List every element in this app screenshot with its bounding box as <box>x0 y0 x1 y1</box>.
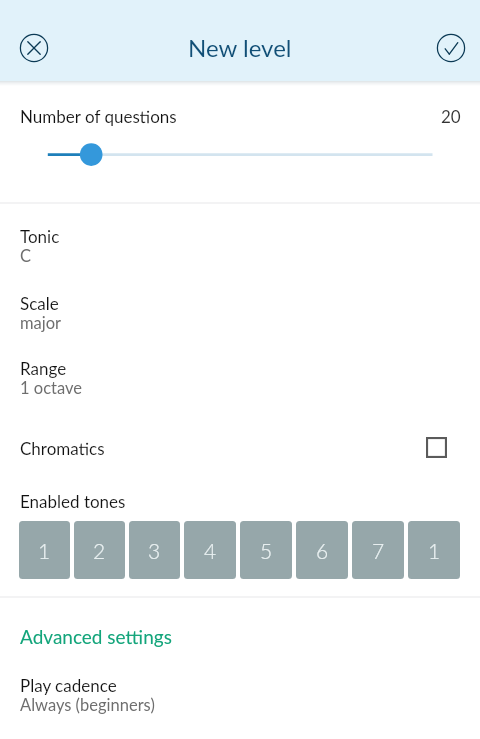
staticText: 1 <box>38 538 51 563</box>
button[interactable]: Close <box>14 28 54 68</box>
button[interactable]: 5 <box>240 521 292 579</box>
button[interactable]: Confirm <box>431 28 471 68</box>
staticText: 5 <box>260 538 273 563</box>
button[interactable]: 2 <box>74 521 125 579</box>
button[interactable]: 4 <box>184 521 236 579</box>
staticText: 2 <box>93 538 106 563</box>
button[interactable]: Chromatics <box>0 424 480 470</box>
staticText: 3 <box>148 538 161 563</box>
button[interactable]: 1 <box>19 521 70 579</box>
button[interactable]: Advanced settings <box>20 625 172 648</box>
staticText: Enabled tones <box>20 491 126 511</box>
staticText: Always (beginners) <box>20 695 155 715</box>
staticText: Chromatics <box>20 438 105 458</box>
staticText: Number of questions <box>20 106 177 126</box>
button[interactable]: Scale <box>0 293 480 345</box>
button[interactable]: 3 <box>129 521 180 579</box>
staticText: 1 <box>428 538 441 563</box>
button[interactable]: Play cadence <box>0 675 480 727</box>
staticText: 7 <box>372 538 385 563</box>
staticText: 20 <box>441 106 461 126</box>
button[interactable]: Number of questions <box>0 138 480 172</box>
staticText: Scale <box>20 293 59 313</box>
button[interactable]: Range <box>0 358 480 410</box>
staticText: C <box>20 246 32 266</box>
staticText: 1 octave <box>20 378 82 398</box>
staticText: 6 <box>316 538 329 563</box>
staticText: New level <box>188 33 292 62</box>
staticText: Tonic <box>20 226 60 246</box>
button[interactable]: 1 <box>408 521 460 579</box>
staticText: 4 <box>204 538 217 563</box>
staticText: Play cadence <box>20 675 117 695</box>
button[interactable]: Tonic <box>0 226 480 278</box>
button[interactable]: 6 <box>296 521 348 579</box>
staticText: major <box>20 313 62 333</box>
button[interactable]: 7 <box>352 521 404 579</box>
staticText: Range <box>20 358 67 378</box>
